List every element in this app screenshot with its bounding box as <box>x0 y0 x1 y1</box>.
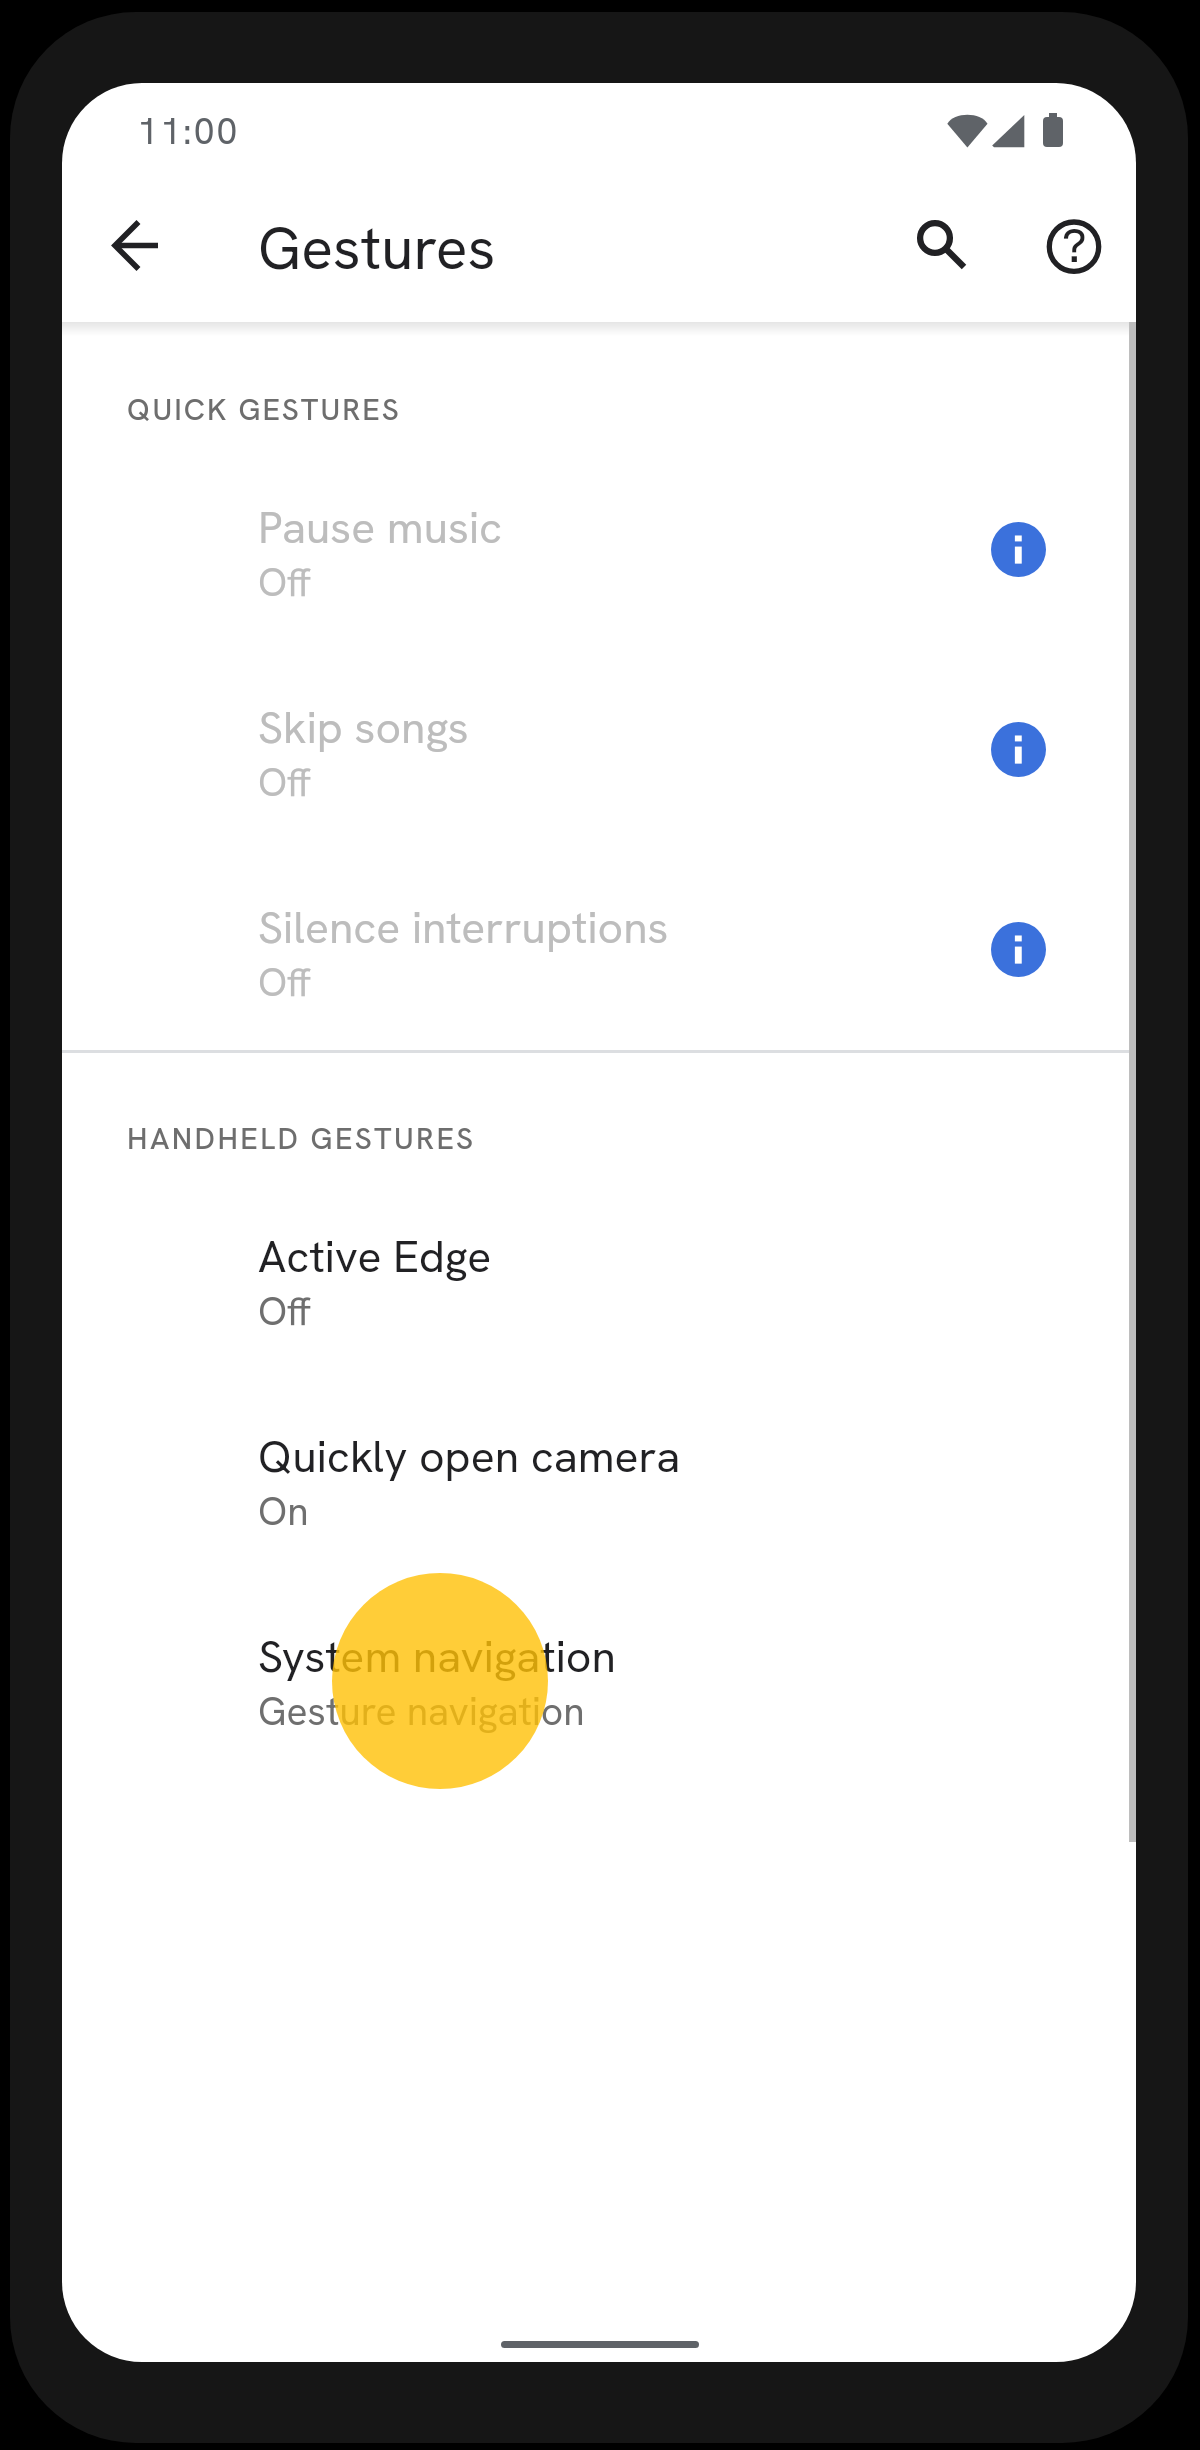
button[interactable]: More information <box>991 922 1046 977</box>
button[interactable]: Pause music <box>62 437 1136 637</box>
staticText: Silence interruptions <box>258 898 669 956</box>
staticText: Gesture navigation <box>258 1686 585 1737</box>
button[interactable]: More information <box>991 522 1046 577</box>
button[interactable]: Navigate up <box>76 184 194 302</box>
button[interactable]: Quickly open camera <box>62 1366 1136 1566</box>
staticText: Off <box>258 1286 311 1337</box>
staticText: Gestures <box>258 210 496 287</box>
button[interactable]: Skip songs <box>62 637 1136 837</box>
staticText: ? <box>1062 214 1087 277</box>
staticText: Off <box>258 957 311 1008</box>
staticText: Off <box>258 757 311 808</box>
staticText: Pause music <box>258 498 503 556</box>
staticText: Off <box>258 557 311 608</box>
button[interactable]: Active Edge <box>62 1166 1136 1366</box>
staticText: QUICK GESTURES <box>127 390 401 429</box>
staticText: Quickly open camera <box>258 1427 681 1485</box>
staticText: HANDHELD GESTURES <box>127 1119 476 1158</box>
button[interactable]: Help <box>1031 204 1117 290</box>
staticText: On <box>258 1486 309 1537</box>
button[interactable]: Search <box>892 194 978 280</box>
button[interactable]: More information <box>991 722 1046 777</box>
staticText: System navigation <box>258 1627 616 1685</box>
staticText: Active Edge <box>258 1227 492 1285</box>
staticText: Skip songs <box>258 698 469 756</box>
button[interactable]: System navigation <box>62 1566 1136 1766</box>
staticText: 11:00 <box>137 106 240 156</box>
button[interactable]: Silence interruptions <box>62 837 1136 1037</box>
